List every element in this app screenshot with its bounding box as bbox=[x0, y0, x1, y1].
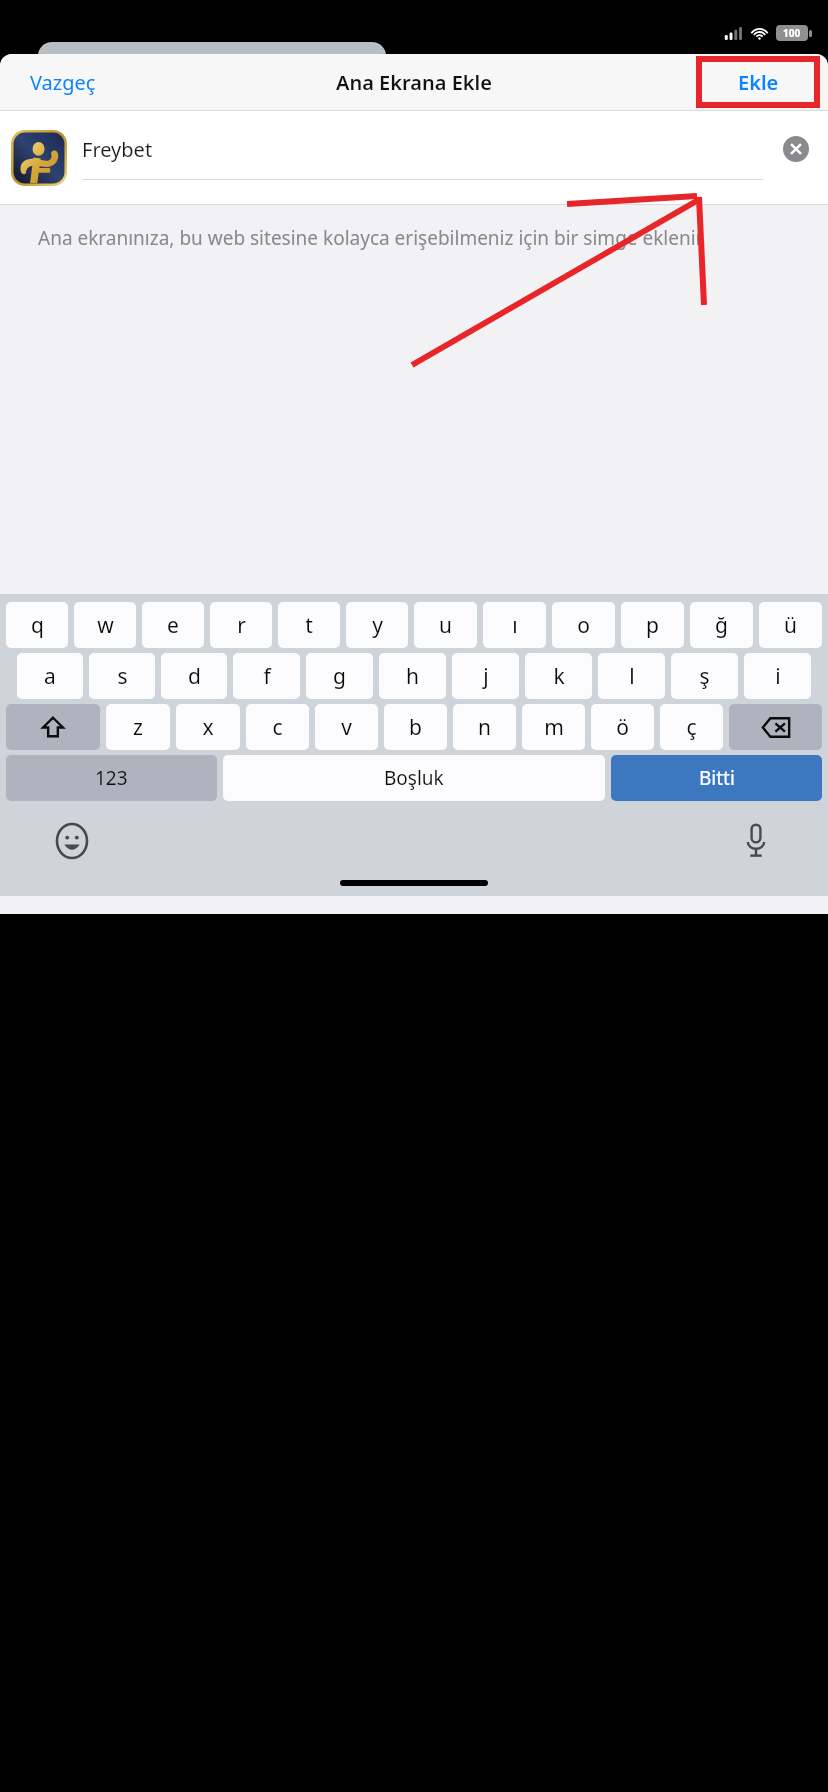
button[interactable]: b bbox=[384, 704, 447, 750]
staticText: ş bbox=[699, 662, 710, 691]
staticText: Vazgeç bbox=[30, 69, 96, 96]
button[interactable]: k bbox=[525, 653, 592, 699]
button[interactable]: g bbox=[306, 653, 373, 699]
staticText: y bbox=[372, 611, 383, 640]
staticText: f bbox=[263, 662, 271, 691]
staticText: ç bbox=[686, 713, 697, 742]
staticText: x bbox=[202, 713, 214, 742]
button[interactable]: Boşluk bbox=[223, 755, 605, 801]
staticText: s bbox=[117, 662, 128, 691]
button[interactable]: ı bbox=[483, 602, 546, 648]
button[interactable]: n bbox=[453, 704, 516, 750]
staticText: e bbox=[167, 611, 179, 640]
button[interactable]: z bbox=[106, 704, 170, 750]
staticText: q bbox=[31, 611, 44, 640]
button[interactable]: ç bbox=[660, 704, 723, 750]
staticText: i bbox=[775, 662, 781, 691]
button[interactable]: ö bbox=[591, 704, 654, 750]
staticText: a bbox=[44, 662, 56, 691]
button[interactable]: j bbox=[452, 653, 519, 699]
button[interactable]: Sil bbox=[729, 704, 822, 750]
staticText: Bitti bbox=[699, 765, 735, 791]
button[interactable]: f bbox=[233, 653, 300, 699]
button[interactable]: c bbox=[246, 704, 309, 750]
button[interactable]: l bbox=[598, 653, 665, 699]
staticText: ı bbox=[512, 611, 518, 640]
staticText: v bbox=[341, 713, 352, 742]
staticText: g bbox=[333, 662, 346, 691]
staticText: Freybet bbox=[82, 136, 153, 163]
staticText: d bbox=[188, 662, 201, 691]
button[interactable]: h bbox=[379, 653, 446, 699]
staticText: o bbox=[577, 611, 590, 640]
button[interactable]: x bbox=[176, 704, 240, 750]
staticText: r bbox=[237, 611, 246, 640]
button[interactable]: o bbox=[552, 602, 615, 648]
button[interactable]: Vazgeç bbox=[24, 63, 102, 102]
staticText: n bbox=[478, 713, 491, 742]
staticText: Ana ekranınıza, bu web sitesine kolayca … bbox=[38, 225, 706, 251]
staticText: j bbox=[483, 662, 489, 691]
staticText: ğ bbox=[715, 611, 728, 640]
button[interactable]: q bbox=[6, 602, 68, 648]
button[interactable]: e bbox=[142, 602, 204, 648]
button[interactable]: v bbox=[315, 704, 378, 750]
button[interactable]: ü bbox=[759, 602, 822, 648]
staticText: w bbox=[97, 611, 114, 640]
staticText: c bbox=[272, 713, 283, 742]
button[interactable]: y bbox=[346, 602, 408, 648]
button[interactable]: u bbox=[414, 602, 477, 648]
button[interactable]: Emoji bbox=[52, 821, 92, 861]
button[interactable]: Dikte bbox=[736, 821, 776, 861]
staticText: Boşluk bbox=[384, 765, 444, 791]
staticText: u bbox=[439, 611, 452, 640]
staticText: ö bbox=[616, 713, 629, 742]
button[interactable]: i bbox=[744, 653, 811, 699]
button[interactable]: 123 bbox=[6, 755, 217, 801]
staticText: Ekle bbox=[738, 69, 779, 96]
staticText: 123 bbox=[95, 765, 128, 791]
staticText: ü bbox=[784, 611, 797, 640]
button[interactable]: p bbox=[621, 602, 684, 648]
staticText: m bbox=[544, 713, 564, 742]
staticText: p bbox=[646, 611, 659, 640]
button[interactable]: m bbox=[522, 704, 585, 750]
button[interactable]: d bbox=[161, 653, 227, 699]
button[interactable]: w bbox=[74, 602, 136, 648]
button[interactable]: s bbox=[89, 653, 155, 699]
staticText: t bbox=[305, 611, 313, 640]
staticText: 100 bbox=[783, 26, 801, 40]
button[interactable]: Shift bbox=[6, 704, 100, 750]
staticText: z bbox=[133, 713, 143, 742]
staticText: b bbox=[409, 713, 422, 742]
button[interactable]: Bitti bbox=[611, 755, 822, 801]
button[interactable]: a bbox=[17, 653, 83, 699]
button[interactable]: Temizle bbox=[778, 131, 814, 167]
staticText: l bbox=[629, 662, 635, 691]
staticText: k bbox=[553, 662, 565, 691]
button[interactable]: ğ bbox=[690, 602, 753, 648]
staticText: h bbox=[406, 662, 419, 691]
staticText: Ana Ekrana Ekle bbox=[336, 69, 492, 96]
button[interactable]: t bbox=[278, 602, 340, 648]
button[interactable]: Ekle bbox=[734, 65, 783, 100]
button[interactable]: r bbox=[210, 602, 272, 648]
button[interactable]: ş bbox=[671, 653, 738, 699]
